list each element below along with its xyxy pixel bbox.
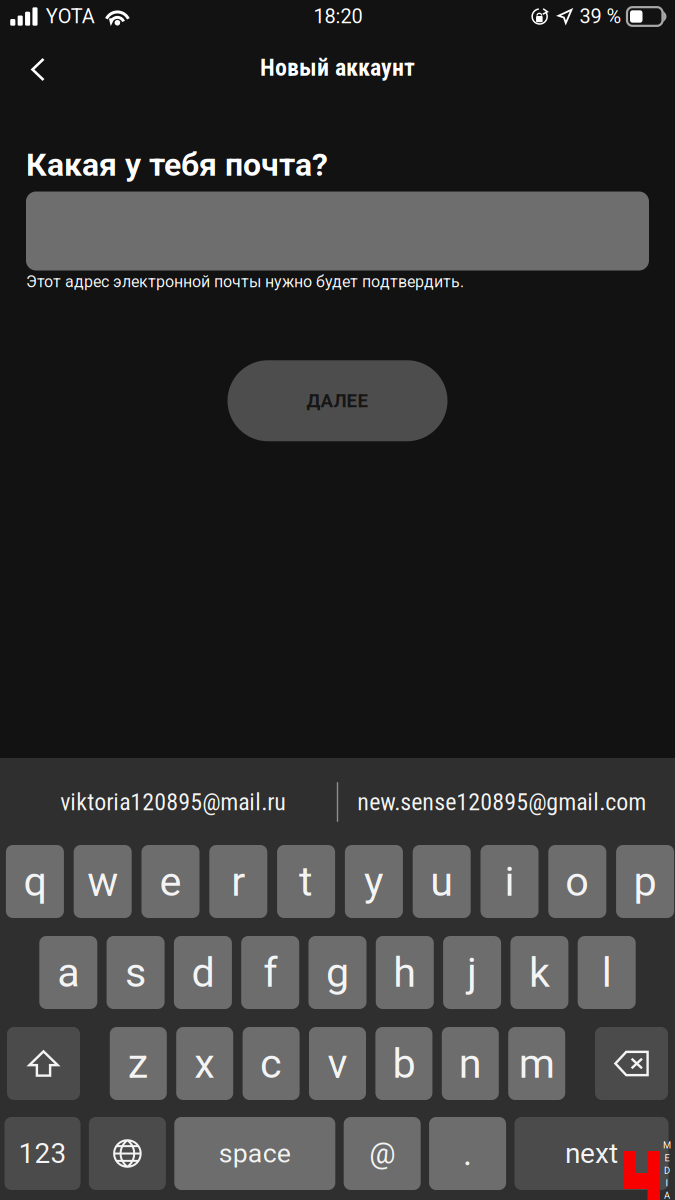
staticText: Этот адрес электронной почты нужно будет… [26,272,464,291]
button[interactable]: m [508,1027,565,1100]
staticText: A [664,1190,670,1200]
button[interactable]: s [107,936,165,1009]
button[interactable]: next [514,1117,668,1190]
button[interactable]: Shift [7,1027,80,1100]
staticText: i [504,857,514,906]
button[interactable]: space [174,1117,335,1190]
button[interactable]: Next keyboard [89,1117,166,1190]
staticText: E [664,1152,669,1163]
button[interactable]: d [174,936,232,1009]
button[interactable]: i [480,845,538,918]
button[interactable]: w [74,845,132,918]
button[interactable]: f [241,936,299,1009]
button[interactable]: p [616,845,674,918]
staticText: t [299,857,313,906]
staticText: @ [369,1136,395,1171]
staticText: viktoria120895@mail.ru [60,788,286,816]
staticText: o [565,857,589,906]
button[interactable]: r [209,845,267,918]
staticText: Новый аккаунт [260,53,415,81]
staticText: y [364,857,384,906]
staticText: 123 [18,1137,66,1170]
button[interactable]: a [39,936,97,1009]
button[interactable]: g [308,936,366,1009]
button[interactable]: . [429,1117,506,1190]
button[interactable]: c [243,1027,300,1100]
staticText: z [128,1039,149,1088]
button[interactable]: h [376,936,434,1009]
staticText: D [664,1165,670,1176]
button[interactable]: Back [0,33,75,96]
staticText: g [326,948,349,997]
staticText: a [57,948,79,997]
staticText: s [125,948,146,997]
button[interactable]: Backspace [595,1027,668,1100]
staticText: . [463,1133,472,1174]
staticText: ДАЛЕЕ [306,390,368,412]
button[interactable]: k [510,936,568,1009]
staticText: k [529,948,550,997]
button[interactable]: o [548,845,606,918]
staticText: w [87,857,118,906]
button[interactable]: t [277,845,335,918]
staticText: I [665,1178,668,1188]
button[interactable]: new.sense120895@gmail.com [338,780,665,824]
button[interactable]: l [578,936,636,1009]
staticText: c [260,1039,282,1088]
button[interactable]: viktoria120895@mail.ru [10,780,337,824]
button[interactable]: z [110,1027,167,1100]
staticText: l [602,948,612,997]
staticText: r [231,857,245,906]
staticText: v [327,1039,347,1088]
staticText: new.sense120895@gmail.com [357,788,646,816]
button[interactable]: ДАЛЕЕ [227,360,447,441]
staticText: space [219,1138,291,1169]
button[interactable]: y [345,845,403,918]
staticText: M [663,1140,671,1151]
button[interactable]: v [309,1027,366,1100]
staticText: f [263,948,277,997]
button[interactable]: b [375,1027,432,1100]
button[interactable]: j [443,936,501,1009]
staticText: h [393,948,416,997]
button[interactable]: u [413,845,471,918]
button[interactable]: @ [344,1117,421,1190]
staticText: d [191,948,214,997]
staticText: next [565,1137,618,1170]
staticText: p [634,857,657,906]
staticText: YOTA [46,5,95,28]
staticText: 39 % [579,5,621,28]
staticText: u [430,857,453,906]
button[interactable]: x [176,1027,233,1100]
staticText: e [159,857,181,906]
staticText: 18:20 [313,5,362,28]
button[interactable]: 123 [4,1117,80,1190]
staticText: b [392,1039,415,1088]
button[interactable]: e [141,845,199,918]
staticText: m [519,1039,555,1088]
button[interactable]: n [442,1027,499,1100]
staticText: q [23,857,46,906]
staticText: Какая у тебя почта? [26,146,328,183]
staticText: x [194,1039,215,1088]
staticText: n [459,1039,482,1088]
button[interactable]: q [6,845,64,918]
staticText: j [467,948,477,997]
